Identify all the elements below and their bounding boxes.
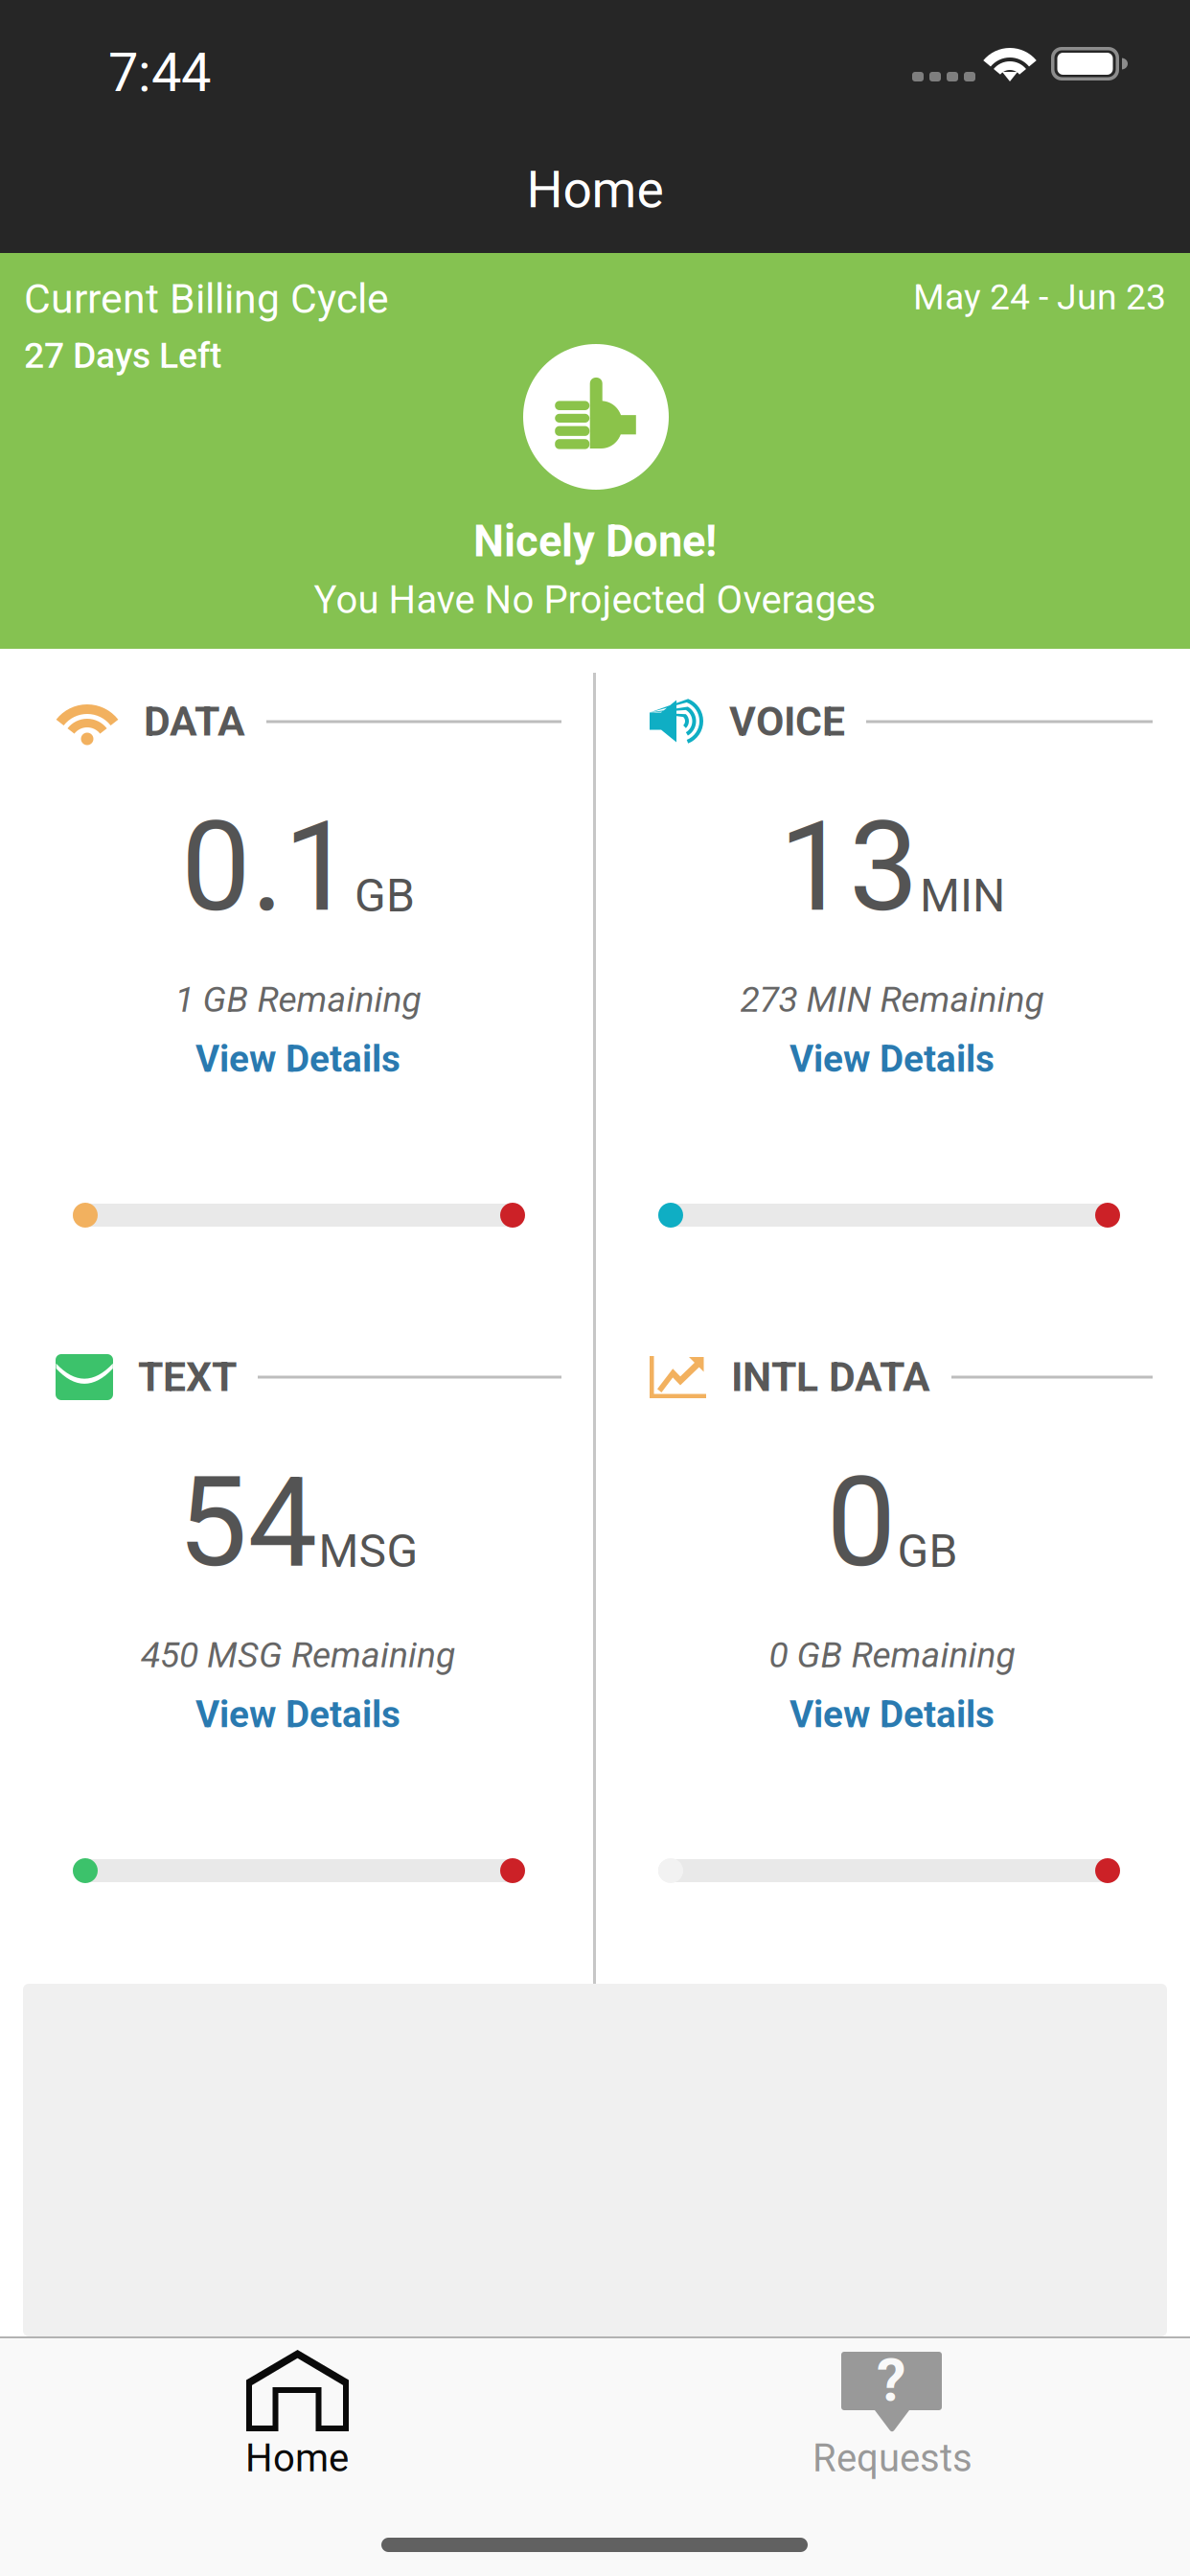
staticText: MIN (920, 869, 1005, 923)
staticText: 0.1 (181, 795, 354, 940)
button[interactable]: View Details (0, 1038, 633, 1080)
staticText: 54 (178, 1450, 318, 1595)
staticText: 13 (779, 795, 919, 940)
staticText: 1 GB Remaining (175, 979, 421, 1020)
staticText: DATA (144, 698, 245, 746)
staticText: View Details (195, 1693, 400, 1736)
staticText: Requests (812, 2436, 973, 2481)
staticText: Current Billing Cycle (24, 275, 389, 323)
staticText: VOICE (729, 698, 845, 746)
staticText: View Details (790, 1693, 995, 1736)
staticText: May 24 - Jun 23 (913, 276, 1166, 318)
staticText: Home (245, 2436, 349, 2481)
staticText: View Details (195, 1037, 400, 1081)
button[interactable]: View Details (0, 1693, 633, 1736)
staticText: ? (877, 2346, 906, 2415)
staticText: Nicely Done! (473, 516, 717, 567)
staticText: Home (526, 160, 664, 220)
button[interactable]: ? (595, 2338, 1190, 2530)
staticText: 450 MSG Remaining (141, 1634, 455, 1676)
button[interactable]: Home (0, 2338, 595, 2530)
staticText: GB (897, 1524, 958, 1578)
button[interactable]: View Details (557, 1693, 1190, 1736)
staticText: 273 MIN Remaining (740, 979, 1044, 1020)
staticText: INTL DATA (731, 1353, 930, 1401)
staticText: TEXT (138, 1353, 237, 1401)
staticText: View Details (790, 1037, 995, 1081)
staticText: MSG (319, 1524, 418, 1578)
staticText: 27 Days Left (24, 334, 221, 376)
button[interactable]: View Details (557, 1038, 1190, 1080)
staticText: GB (355, 869, 415, 923)
staticText: 0 (826, 1450, 896, 1595)
staticText: You Have No Projected Overages (314, 577, 876, 622)
staticText: 7:44 (108, 41, 211, 104)
staticText: 0 GB Remaining (769, 1634, 1015, 1676)
